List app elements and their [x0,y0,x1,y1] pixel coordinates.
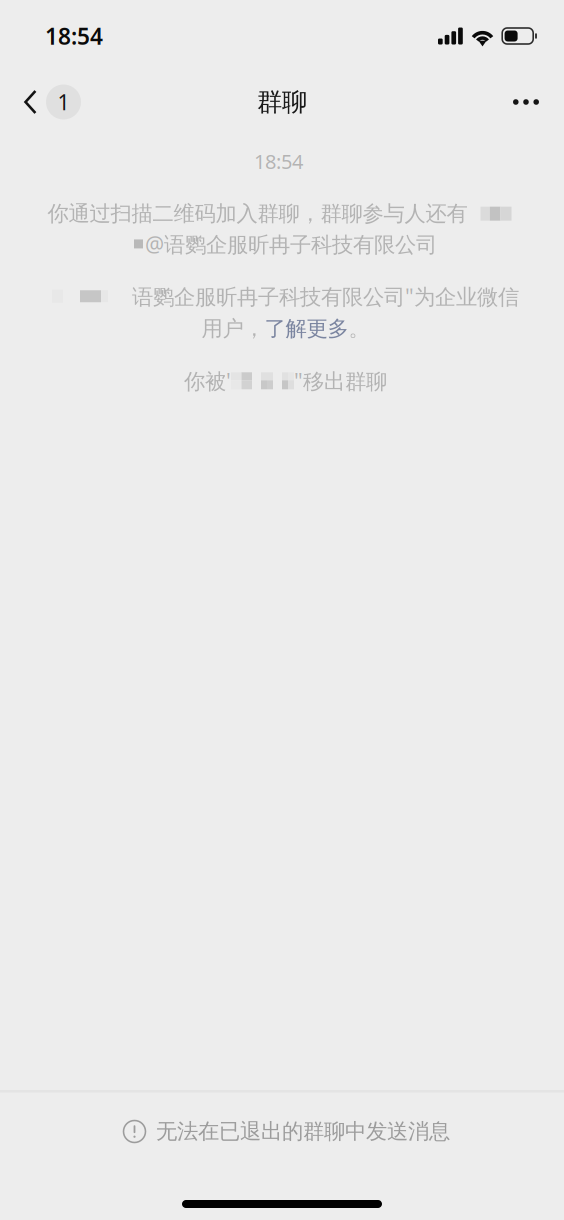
staticText: 18:54 [45,21,103,51]
staticText: 用户， [201,315,264,342]
staticText: 18:54 [254,148,303,175]
staticText: "移出群聊 [294,367,387,395]
staticText: @语鹦企服昕冉子科技有限公司 [145,230,437,258]
staticText: 1 [57,88,69,116]
staticText: 无法在已退出的群聊中发送消息 [156,1118,450,1145]
button[interactable]: More options [489,75,564,129]
staticText: 你被' [184,367,231,395]
staticText: 群聊 [257,86,307,117]
staticText: 你通过扫描二维码加入群聊，群聊参与人还有 [47,201,467,227]
staticText: 。 [348,315,369,342]
staticText: 了解更多 [264,315,348,342]
staticText: 语鹦企服昕冉子科技有限公司"为企业微信 [132,282,519,310]
button[interactable]: Back [0,75,93,129]
